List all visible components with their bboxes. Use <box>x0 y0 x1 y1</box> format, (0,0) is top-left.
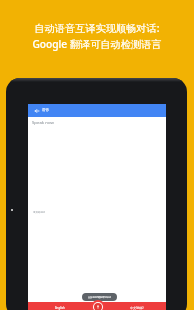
staticText: English <box>55 306 65 310</box>
button[interactable]: Back <box>28 104 166 117</box>
staticText: 中文(简体) <box>130 306 144 310</box>
other: Back <box>35 109 39 113</box>
staticText: 语音 <box>42 108 50 113</box>
button[interactable]: Microphone <box>91 300 105 310</box>
staticText: Speak now <box>32 119 54 125</box>
button[interactable]: English <box>37 302 83 310</box>
staticText: 点按麦克风图标即可说话 <box>88 296 112 299</box>
button[interactable]: 中文(简体) <box>114 302 160 310</box>
staticText: 自动语音互译实现顺畅对话: <box>34 21 160 35</box>
staticText: Google 翻译可自动检测语言 <box>32 37 162 51</box>
staticText: 请开始说话 <box>33 211 45 214</box>
button[interactable]: 点按麦克风图标即可说话 <box>82 293 117 301</box>
